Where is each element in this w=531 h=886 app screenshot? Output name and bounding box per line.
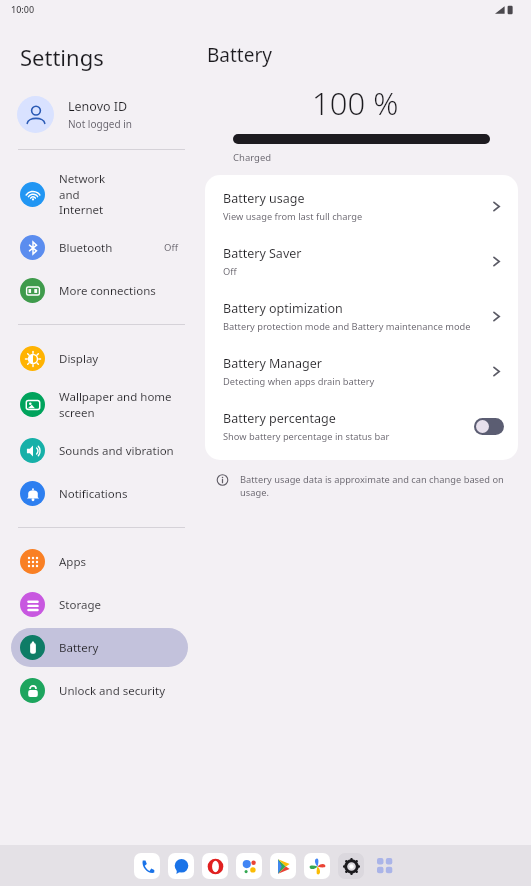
staticText: Not logged in bbox=[68, 117, 132, 131]
button[interactable]: Network and Internet bbox=[11, 164, 188, 224]
staticText: Battery percentage bbox=[223, 410, 336, 427]
button[interactable]: Assistant bbox=[236, 853, 262, 879]
button[interactable]: Opera bbox=[202, 853, 228, 879]
button[interactable]: Sounds and vibration bbox=[11, 431, 188, 470]
staticText: More connections bbox=[59, 283, 156, 299]
button[interactable]: More connections bbox=[11, 271, 188, 310]
button[interactable]: Battery optimization bbox=[205, 289, 518, 344]
staticText: Off bbox=[223, 265, 237, 278]
staticText: Battery bbox=[59, 640, 99, 656]
staticText: View usage from last full charge bbox=[223, 210, 363, 223]
button[interactable]: Battery percentage bbox=[205, 399, 518, 454]
button[interactable]: Battery bbox=[11, 628, 188, 667]
staticText: Battery usage data is approximate and ca… bbox=[240, 473, 507, 499]
staticText: Battery Saver bbox=[223, 245, 302, 262]
staticText: Apps bbox=[59, 554, 87, 570]
button[interactable]: Play Store bbox=[270, 853, 296, 879]
button[interactable]: Bluetooth bbox=[11, 228, 188, 267]
button[interactable]: Battery Saver bbox=[205, 234, 518, 289]
staticText: Show battery percentage in status bar bbox=[223, 430, 390, 443]
staticText: Notifications bbox=[59, 486, 128, 502]
button[interactable]: Notifications bbox=[11, 474, 188, 513]
staticText: Bluetooth bbox=[59, 240, 113, 256]
button[interactable]: Display bbox=[11, 339, 188, 378]
button[interactable]: Photos bbox=[304, 853, 330, 879]
staticText: Detecting when apps drain battery bbox=[223, 375, 375, 388]
button[interactable]: All apps bbox=[372, 853, 398, 879]
button[interactable]: Apps bbox=[11, 542, 188, 581]
staticText: Storage bbox=[59, 597, 101, 613]
button[interactable]: Settings bbox=[338, 853, 364, 879]
staticText: Unlock and security bbox=[59, 683, 166, 699]
button[interactable]: Lenovo ID bbox=[0, 92, 199, 137]
staticText: Charged bbox=[233, 151, 272, 164]
button[interactable]: Wallpaper and home screen bbox=[11, 382, 188, 427]
staticText: Battery Manager bbox=[223, 355, 322, 372]
button[interactable]: Phone bbox=[134, 853, 160, 879]
staticText: Network and Internet bbox=[59, 171, 106, 217]
staticText: Display bbox=[59, 351, 99, 367]
staticText: Battery protection mode and Battery main… bbox=[223, 320, 471, 333]
button[interactable]: Messages bbox=[168, 853, 194, 879]
button[interactable]: Battery Manager bbox=[205, 344, 518, 399]
staticText: Lenovo ID bbox=[68, 98, 128, 115]
button[interactable]: Unlock and security bbox=[11, 671, 188, 710]
button[interactable]: Storage bbox=[11, 585, 188, 624]
staticText: Wallpaper and home screen bbox=[59, 389, 172, 420]
staticText: Off bbox=[164, 241, 178, 254]
staticText: Sounds and vibration bbox=[59, 443, 174, 459]
other: Battery percentage toggle, off bbox=[474, 418, 504, 435]
button[interactable]: Battery usage bbox=[205, 179, 518, 234]
staticText: 100 % bbox=[312, 82, 399, 124]
staticText: Settings bbox=[20, 42, 104, 72]
staticText: Battery bbox=[207, 42, 272, 68]
staticText: Battery usage bbox=[223, 190, 305, 207]
staticText: 10:00 bbox=[11, 3, 35, 15]
staticText: Battery optimization bbox=[223, 300, 343, 317]
